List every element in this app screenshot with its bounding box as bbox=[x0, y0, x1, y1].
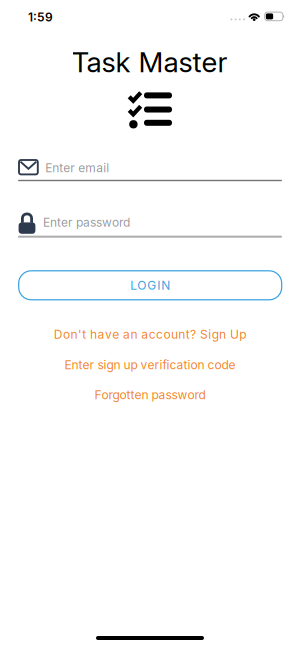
button[interactable]: Forgotten password bbox=[94, 388, 205, 402]
button[interactable]: Don't have an account? Sign Up bbox=[54, 327, 246, 342]
staticText: Enter email bbox=[45, 161, 109, 175]
staticText: 1:59 bbox=[28, 10, 53, 24]
button[interactable]: Enter password bbox=[18, 200, 282, 242]
button[interactable]: Enter email bbox=[18, 145, 282, 185]
staticText: Forgotten password bbox=[94, 388, 205, 402]
staticText: Don't have an account? Sign Up bbox=[54, 327, 246, 342]
staticText: Enter password bbox=[43, 215, 130, 230]
staticText: Enter sign up verification code bbox=[64, 358, 235, 372]
button[interactable]: Enter sign up verification code bbox=[64, 358, 235, 372]
staticText: Task Master bbox=[71, 45, 227, 79]
button[interactable]: LOGIN bbox=[19, 271, 282, 300]
staticText: LOGIN bbox=[130, 278, 170, 292]
